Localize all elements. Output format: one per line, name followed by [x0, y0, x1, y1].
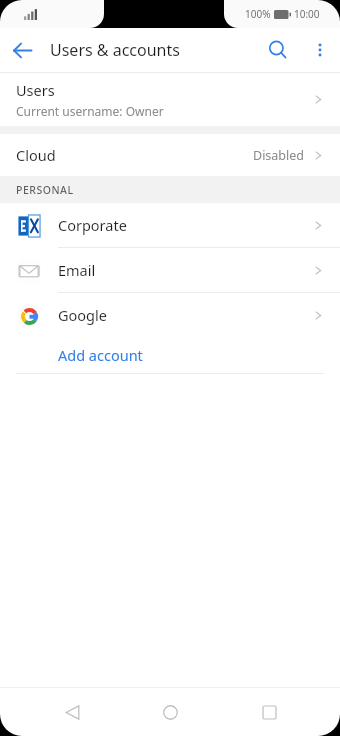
staticText: Add account [58, 345, 143, 365]
staticText: 10:00 [294, 7, 320, 21]
staticText: Current username: Owner [16, 103, 164, 119]
button[interactable]: Email [0, 248, 340, 292]
button[interactable]: Users [0, 73, 340, 126]
button[interactable]: Back [45, 688, 99, 736]
staticText: Disabled [253, 147, 305, 164]
staticText: Users [16, 80, 55, 100]
button[interactable]: Google [0, 293, 340, 337]
button[interactable]: More options [300, 30, 340, 70]
staticText: 100% [245, 7, 271, 21]
button[interactable]: Back [0, 28, 44, 72]
button[interactable]: Cloud [0, 134, 340, 176]
button[interactable]: Add account [0, 337, 340, 373]
staticText: Email [58, 260, 96, 280]
staticText: Corporate [58, 215, 127, 235]
button[interactable]: Home [143, 688, 197, 736]
button[interactable]: Corporate [0, 203, 340, 247]
button[interactable]: Recent apps [242, 688, 296, 736]
staticText: PERSONAL [16, 183, 74, 197]
staticText: Users & accounts [50, 39, 180, 61]
staticText: Google [58, 305, 107, 325]
button[interactable]: Search [256, 28, 300, 72]
staticText: Cloud [16, 145, 56, 165]
